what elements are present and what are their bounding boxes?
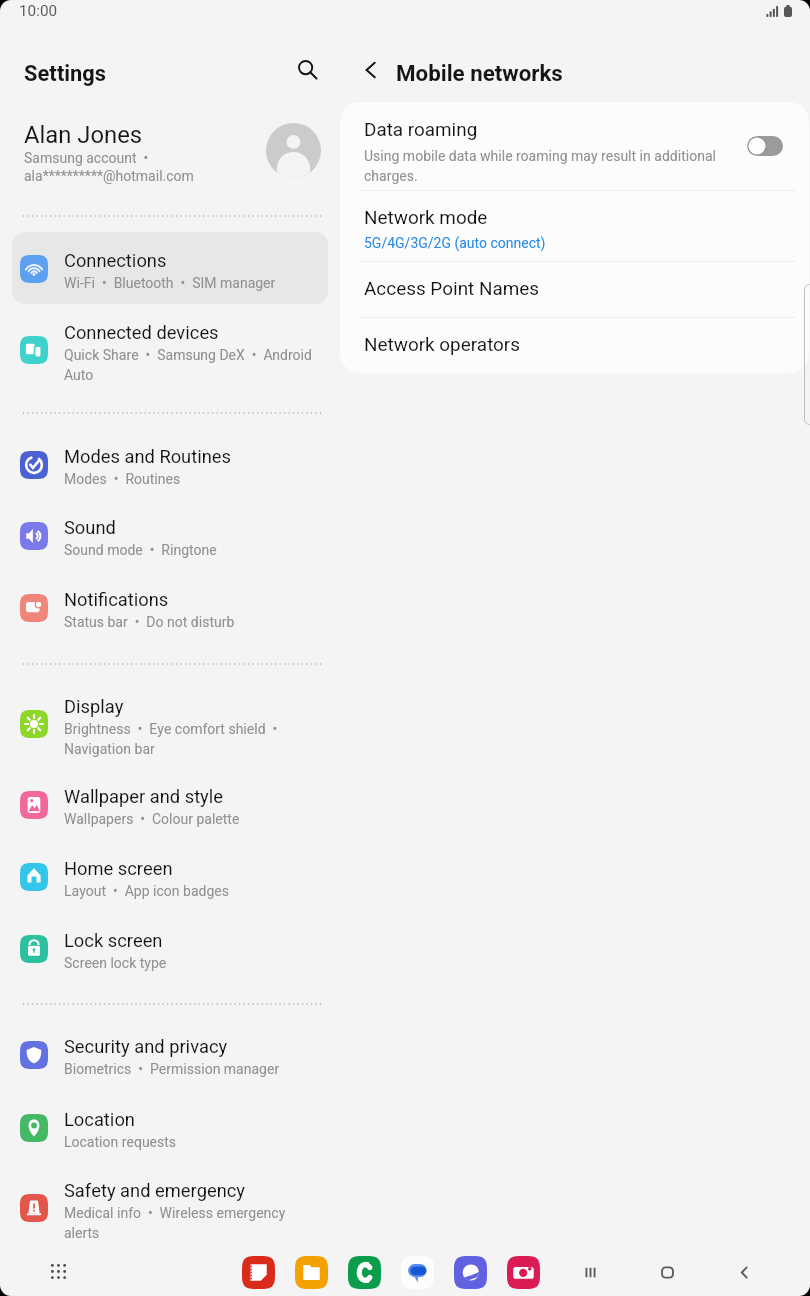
staticText: Lock screen <box>64 930 163 953</box>
button[interactable]: Home <box>649 1254 685 1290</box>
button[interactable]: Apps <box>38 1251 78 1291</box>
button[interactable] <box>0 571 340 643</box>
staticText: Notifications <box>64 589 169 612</box>
staticText: Sound mode • Ringtone <box>64 541 217 561</box>
staticText: Using mobile data while roaming may resu… <box>364 147 724 187</box>
button[interactable]: My Files <box>295 1256 328 1289</box>
button[interactable]: Network mode <box>340 191 809 261</box>
button[interactable]: Internet <box>454 1256 487 1289</box>
staticText: Sound <box>64 517 116 540</box>
staticText: Alan Jones <box>24 121 143 151</box>
button[interactable] <box>0 428 340 500</box>
staticText: 10:00 <box>19 2 58 22</box>
staticText: Screen lock type <box>64 954 167 974</box>
staticText: ala**********@hotmail.com <box>24 168 194 186</box>
staticText: Home screen <box>64 858 173 881</box>
button[interactable]: Recents <box>572 1254 608 1290</box>
button[interactable] <box>0 1162 340 1252</box>
button[interactable] <box>0 678 340 768</box>
staticText: Modes • Routines <box>64 470 181 490</box>
staticText: Samsung account • <box>24 150 149 168</box>
button[interactable] <box>0 768 340 840</box>
button[interactable] <box>0 912 340 984</box>
button[interactable]: Network operators <box>340 318 809 373</box>
button[interactable] <box>0 1091 340 1163</box>
staticText: Data roaming <box>364 119 478 143</box>
button[interactable]: Samsung Notes <box>242 1256 275 1289</box>
staticText: Quick Share • Samsung DeX • Android Auto <box>64 346 318 386</box>
button[interactable]: Search <box>287 49 327 89</box>
button[interactable]: Data roaming <box>741 130 789 162</box>
staticText: Biometrics • Permission manager <box>64 1060 280 1080</box>
staticText: Network operators <box>364 334 520 358</box>
staticText: Layout • App icon badges <box>64 882 229 902</box>
button[interactable]: Messages <box>401 1256 434 1289</box>
staticText: Medical info • Wireless emergency alerts <box>64 1204 318 1244</box>
button[interactable] <box>12 232 328 304</box>
staticText: Wi-Fi • Bluetooth • SIM manager <box>64 274 276 294</box>
button[interactable]: Alan Jones <box>0 106 340 192</box>
button[interactable] <box>0 304 340 394</box>
staticText: Settings <box>24 61 107 89</box>
staticText: Location requests <box>64 1133 177 1153</box>
staticText: Status bar • Do not disturb <box>64 613 235 633</box>
staticText: Brightness • Eye comfort shield • Naviga… <box>64 720 318 760</box>
staticText: Safety and emergency <box>64 1180 246 1203</box>
button[interactable]: Access Point Names <box>340 262 809 317</box>
staticText: Connections <box>64 250 167 273</box>
staticText: Mobile networks <box>396 61 563 90</box>
staticText: Security and privacy <box>64 1036 228 1059</box>
button[interactable] <box>0 840 340 912</box>
button[interactable]: Camera <box>507 1256 540 1289</box>
staticText: 5G/4G/3G/2G (auto connect) <box>364 235 546 253</box>
staticText: Wallpapers • Colour palette <box>64 810 240 830</box>
button[interactable]: Back <box>726 1254 762 1290</box>
staticText: Connected devices <box>64 322 219 345</box>
staticText: Network mode <box>364 207 488 231</box>
staticText: Access Point Names <box>364 278 540 302</box>
staticText: Display <box>64 696 124 719</box>
staticText: Wallpaper and style <box>64 786 223 809</box>
staticText: Location <box>64 1109 135 1132</box>
button[interactable] <box>0 499 340 571</box>
staticText: Modes and Routines <box>64 446 231 469</box>
button[interactable]: Back <box>350 49 392 91</box>
button[interactable]: Contacts <box>348 1256 381 1289</box>
button[interactable]: Data roaming <box>340 102 809 190</box>
button[interactable] <box>0 1018 340 1090</box>
